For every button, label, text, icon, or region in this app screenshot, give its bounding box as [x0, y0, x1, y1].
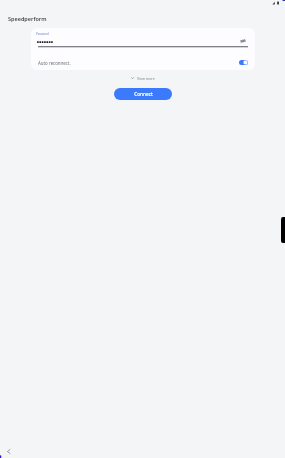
staticText: View more [137, 76, 155, 81]
button[interactable]: View more [0, 74, 285, 82]
button[interactable]: Back [2, 445, 15, 458]
staticText: Connect [134, 91, 153, 97]
staticText: Password [36, 32, 49, 36]
staticText: Speedperform [8, 15, 47, 22]
button[interactable]: Auto reconnect. [31, 54, 255, 70]
button[interactable]: Password [38, 30, 249, 47]
staticText: Auto reconnect. [38, 60, 71, 66]
button[interactable]: Edge panel handle [281, 217, 285, 243]
button[interactable]: Connect [114, 88, 172, 100]
button[interactable]: Hide password [237, 35, 249, 47]
